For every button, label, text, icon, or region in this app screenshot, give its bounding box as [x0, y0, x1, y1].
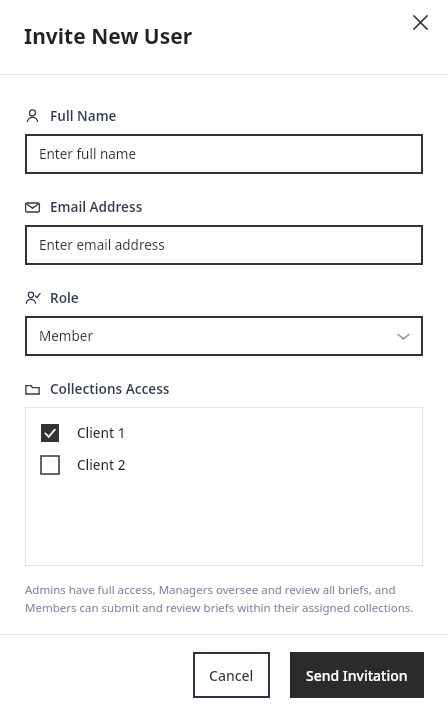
button[interactable]: Member	[25, 316, 423, 356]
button[interactable]: Client 1	[41, 424, 126, 442]
staticText: Collections Access	[50, 380, 170, 398]
staticText: Client 1	[77, 424, 126, 442]
button[interactable]: Client 2	[41, 456, 126, 474]
staticText: Admins have full access, Managers overse…	[25, 582, 423, 615]
staticText: Invite New User	[24, 22, 193, 51]
staticText: Enter full name	[39, 145, 137, 163]
button[interactable]: Send Invitation	[290, 652, 424, 698]
staticText: Send Invitation	[306, 666, 408, 685]
staticText: Full Name	[50, 107, 117, 125]
button[interactable]: Enter full name	[25, 134, 423, 174]
staticText: Email Address	[50, 198, 143, 216]
staticText: Cancel	[209, 666, 254, 685]
button[interactable]: Close	[404, 6, 436, 38]
button[interactable]: Cancel	[193, 652, 270, 698]
button[interactable]: Enter email address	[25, 225, 423, 265]
staticText: Client 2	[77, 456, 126, 474]
staticText: Member	[39, 327, 93, 345]
staticText: Role	[50, 289, 79, 307]
staticText: Enter email address	[39, 236, 165, 254]
